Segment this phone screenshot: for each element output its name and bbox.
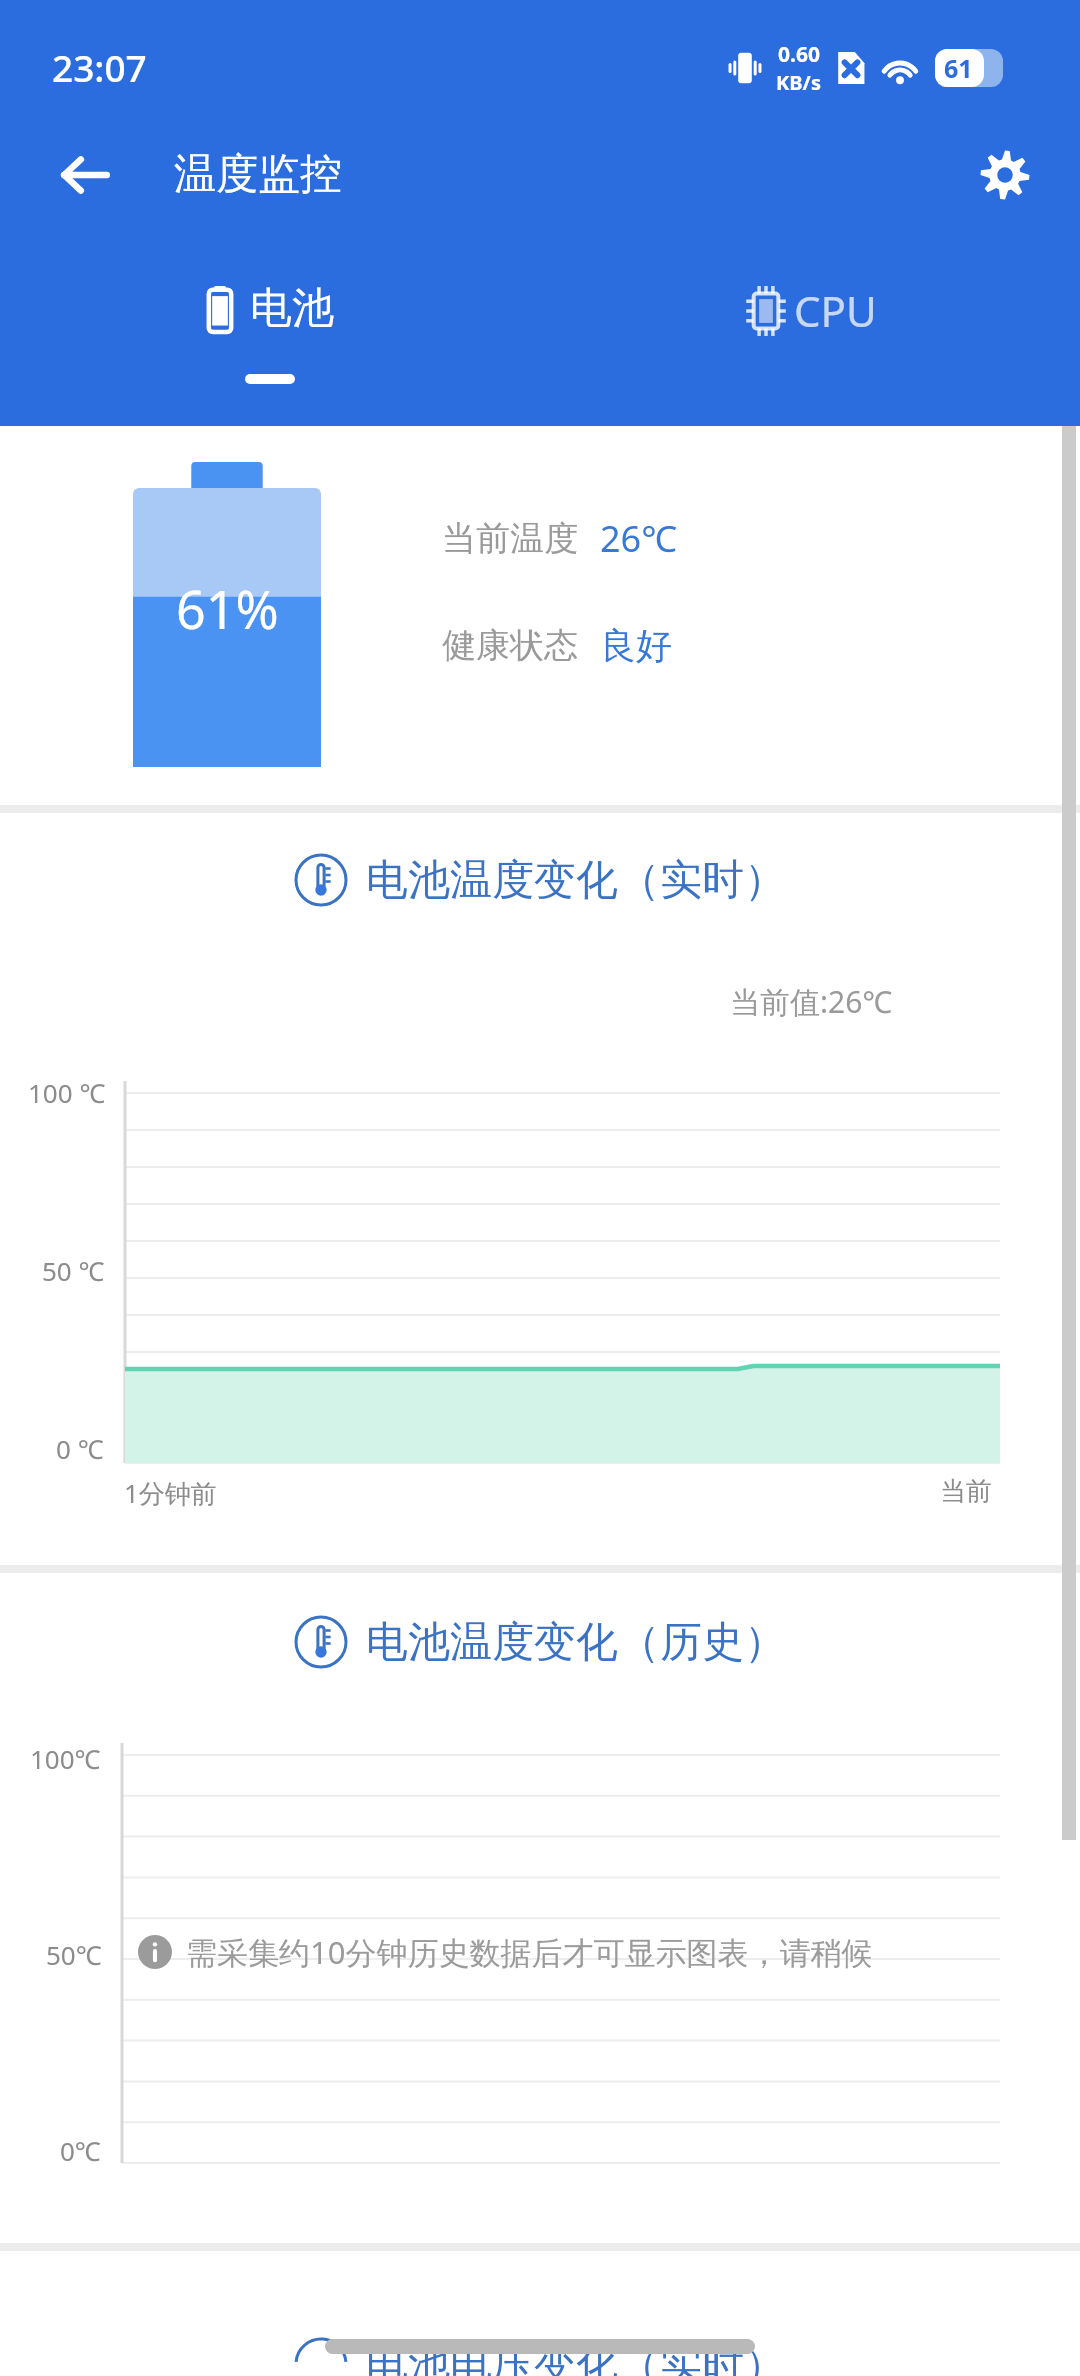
staticText: 电池温度变化（实时） [366,854,786,907]
staticText: 0 ℃ [56,1431,104,1466]
staticText: 26℃ [600,514,678,563]
staticText: 1分钟前 [124,1475,217,1511]
button[interactable]: CPU [540,240,1080,426]
staticText: 61% [176,573,279,644]
staticText: 电池温度变化（历史） [366,1616,786,1669]
staticText: 当前 [940,1475,992,1508]
staticText: 当前值:26℃ [730,981,893,1022]
staticText: 100 ℃ [28,1075,106,1110]
staticText: 健康状态 [442,624,578,667]
button[interactable]: 电池 [0,240,540,426]
staticText: 50℃ [46,1937,102,1972]
button[interactable]: Back [42,132,128,218]
staticText: 温度监控 [174,148,342,201]
staticText: 50 ℃ [42,1253,105,1288]
staticText: 23:07 [52,42,147,92]
staticText: 良好 [600,623,672,668]
staticText: 电池电压变化（实时） [366,2339,786,2376]
staticText: 当前温度 [442,517,578,560]
staticText: KB/s [776,69,821,96]
staticText: 100℃ [30,1741,101,1776]
staticText: 0℃ [60,2133,101,2168]
staticText: 电池 [250,282,334,335]
staticText: 0.60 [778,40,820,69]
staticText: CPU [794,282,877,339]
staticText: 61 [944,51,973,85]
button[interactable]: Settings [962,132,1048,218]
staticText: 需采集约10分钟历史数据后才可显示图表，请稍候 [186,1931,873,1973]
